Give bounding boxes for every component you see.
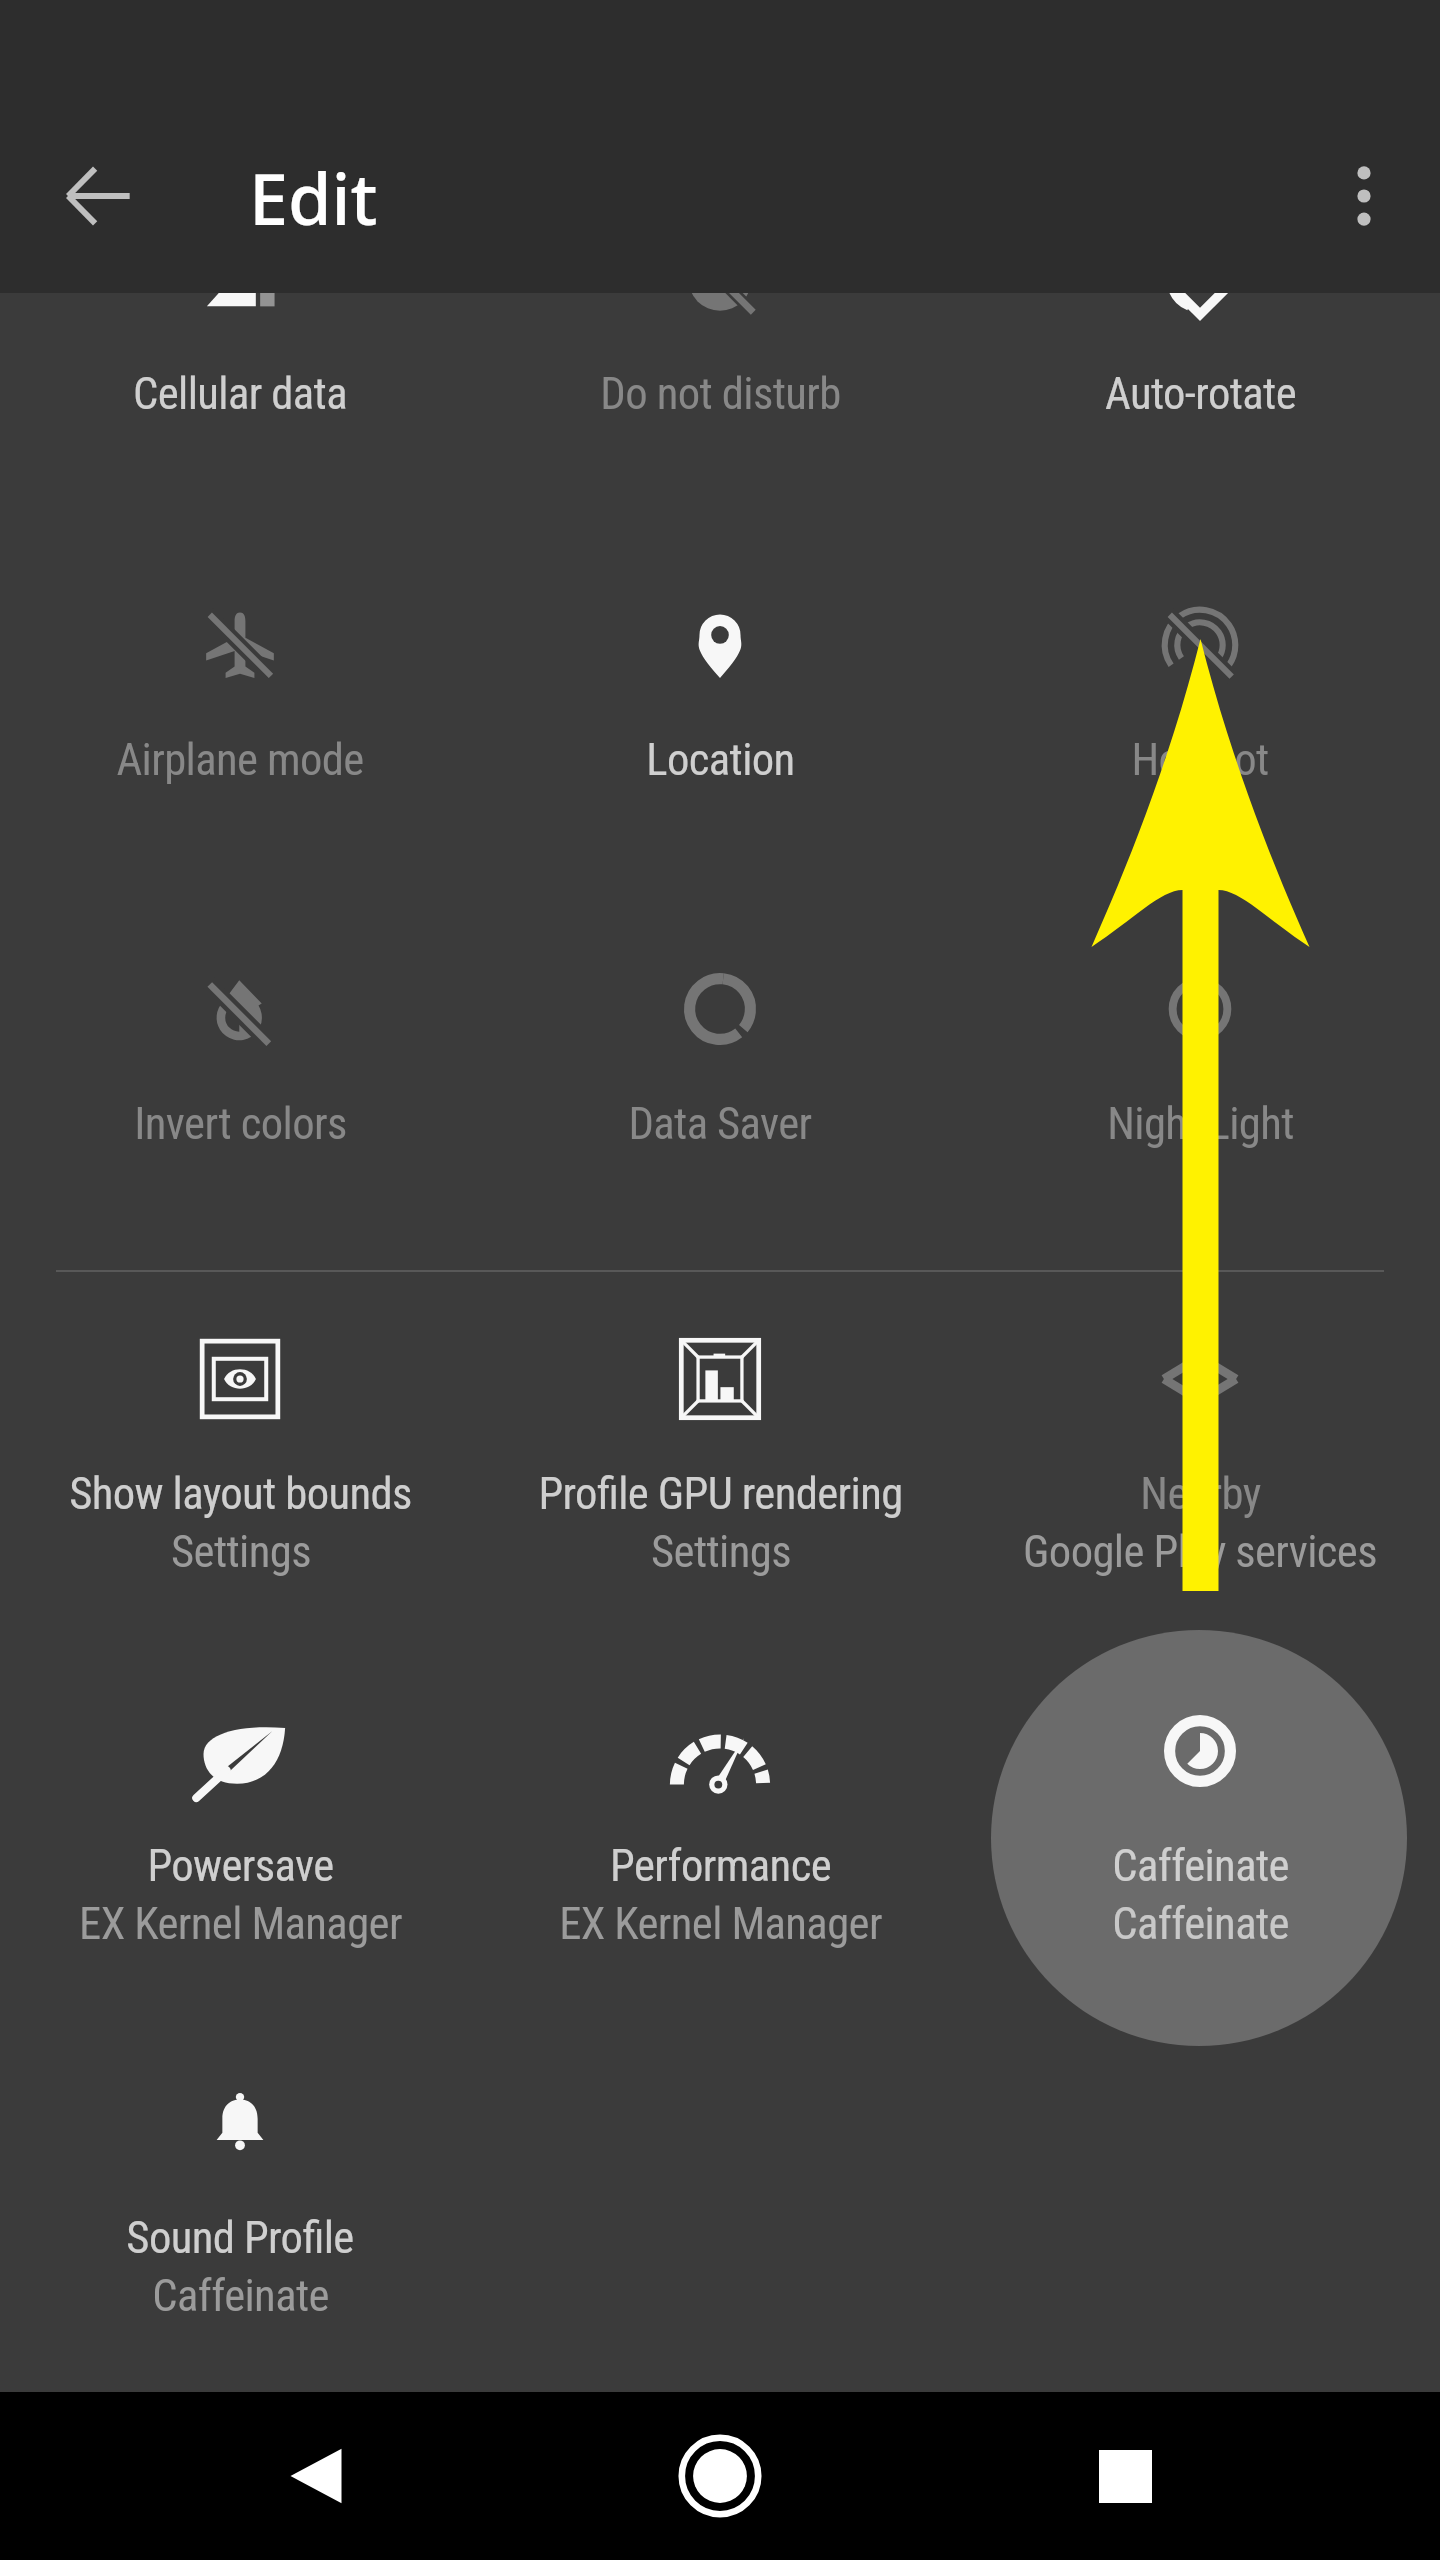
staticText: Night Light	[1107, 1098, 1294, 1150]
button[interactable]: Performance	[480, 1644, 960, 1984]
button[interactable]: Night Light	[960, 902, 1440, 1242]
staticText: Caffeinate	[152, 2270, 329, 2322]
button[interactable]: Auto-rotate	[960, 172, 1440, 512]
button[interactable]: Home	[636, 2392, 804, 2560]
staticText: Edit	[249, 150, 378, 246]
staticText: Show layout bounds	[69, 1468, 412, 1520]
button[interactable]: Cellular data	[0, 172, 480, 512]
staticText: Airplane mode	[116, 734, 364, 786]
button[interactable]: Recents	[1041, 2392, 1209, 2560]
button[interactable]: Back	[232, 2392, 400, 2560]
button[interactable]: More options	[1316, 148, 1412, 244]
staticText: EX Kernel Manager	[559, 1898, 882, 1950]
button[interactable]: Hotspot	[960, 538, 1440, 878]
staticText: Invert colors	[134, 1098, 347, 1150]
button[interactable]: Show layout bounds	[0, 1272, 480, 1612]
staticText: Settings	[651, 1526, 791, 1578]
staticText: Data Saver	[628, 1098, 812, 1150]
button[interactable]: Powersave	[0, 1644, 480, 1984]
staticText: Google Play services	[1023, 1526, 1377, 1578]
staticText: Sound Profile	[126, 2212, 354, 2264]
staticText: Performance	[610, 1840, 831, 1892]
staticText: Settings	[171, 1526, 311, 1578]
staticText: Cellular data	[133, 368, 347, 420]
staticText: Nearby	[1140, 1468, 1261, 1520]
button[interactable]: Airplane mode	[0, 538, 480, 878]
button[interactable]: Profile GPU rendering	[480, 1272, 960, 1612]
button[interactable]: Sound Profile	[0, 2016, 480, 2356]
staticText: Location	[646, 734, 795, 786]
staticText: Caffeinate	[1112, 1840, 1289, 1892]
staticText: EX Kernel Manager	[79, 1898, 402, 1950]
button[interactable]: Location	[480, 538, 960, 878]
button[interactable]: Invert colors	[0, 902, 480, 1242]
staticText: Auto-rotate	[1105, 368, 1296, 420]
staticText: Hotspot	[1131, 734, 1269, 786]
button[interactable]: Navigate up	[50, 148, 146, 244]
button[interactable]: Nearby	[960, 1272, 1440, 1612]
button[interactable]: Caffeinate	[960, 1644, 1440, 1984]
staticText: Powersave	[147, 1840, 334, 1892]
button[interactable]: Data Saver	[480, 902, 960, 1242]
staticText: Caffeinate	[1112, 1898, 1289, 1950]
staticText: Do not disturb	[600, 368, 841, 420]
staticText: Profile GPU rendering	[538, 1468, 903, 1520]
button[interactable]: Do not disturb	[480, 172, 960, 512]
